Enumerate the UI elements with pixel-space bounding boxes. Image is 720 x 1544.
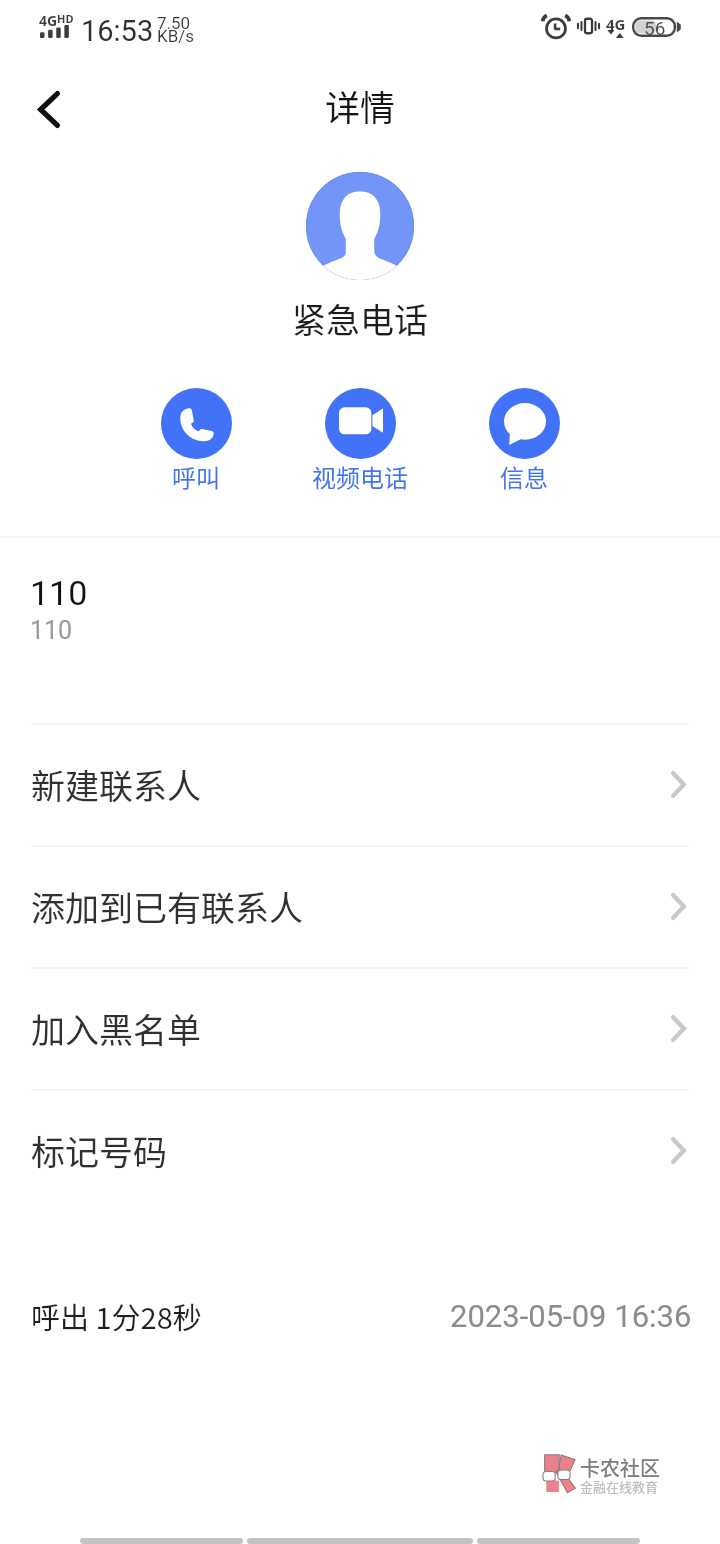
staticText: 4G — [606, 14, 626, 34]
button[interactable]: 呼叫 — [116, 388, 276, 494]
staticText: 56 — [644, 17, 666, 37]
button[interactable]: 视频电话 — [280, 388, 440, 494]
staticText: 110 — [30, 616, 73, 645]
staticText: 金融在线教育 — [580, 1477, 659, 1496]
staticText: 视频电话 — [312, 459, 408, 494]
staticText: 4G — [39, 11, 58, 30]
button[interactable]: 添加到已有联系人 — [0, 845, 720, 967]
button[interactable]: Recents — [477, 1538, 640, 1544]
staticText: 标记号码 — [31, 1126, 671, 1175]
staticText: 卡农社区 — [580, 1453, 660, 1482]
staticText: 新建联系人 — [31, 760, 671, 809]
staticText: HD — [57, 11, 74, 26]
staticText: KB/s — [157, 26, 195, 46]
staticText: 紧急电话 — [0, 294, 720, 343]
staticText: 2023-05-09 16:36 — [450, 1298, 692, 1334]
button[interactable]: 加入黑名单 — [0, 967, 720, 1089]
staticText: 加入黑名单 — [31, 1004, 671, 1053]
button[interactable]: 呼出 1分28秒 — [0, 1278, 720, 1354]
staticText: 添加到已有联系人 — [31, 882, 671, 931]
button[interactable]: Back — [16, 76, 82, 142]
staticText: 16:53 — [81, 14, 154, 48]
staticText: 呼叫 — [172, 459, 220, 494]
button[interactable]: 标记号码 — [0, 1089, 720, 1211]
staticText: 信息 — [500, 459, 548, 494]
button[interactable]: 信息 — [444, 388, 604, 494]
button[interactable]: 110 — [0, 538, 720, 723]
button[interactable]: Home — [247, 1538, 473, 1544]
button[interactable]: Back — [80, 1538, 243, 1544]
staticText: 详情 — [0, 80, 720, 131]
staticText: 7.50 — [157, 13, 191, 33]
button[interactable]: 新建联系人 — [0, 723, 720, 845]
staticText: 呼出 1分28秒 — [31, 1295, 202, 1337]
staticText: 110 — [30, 573, 88, 613]
